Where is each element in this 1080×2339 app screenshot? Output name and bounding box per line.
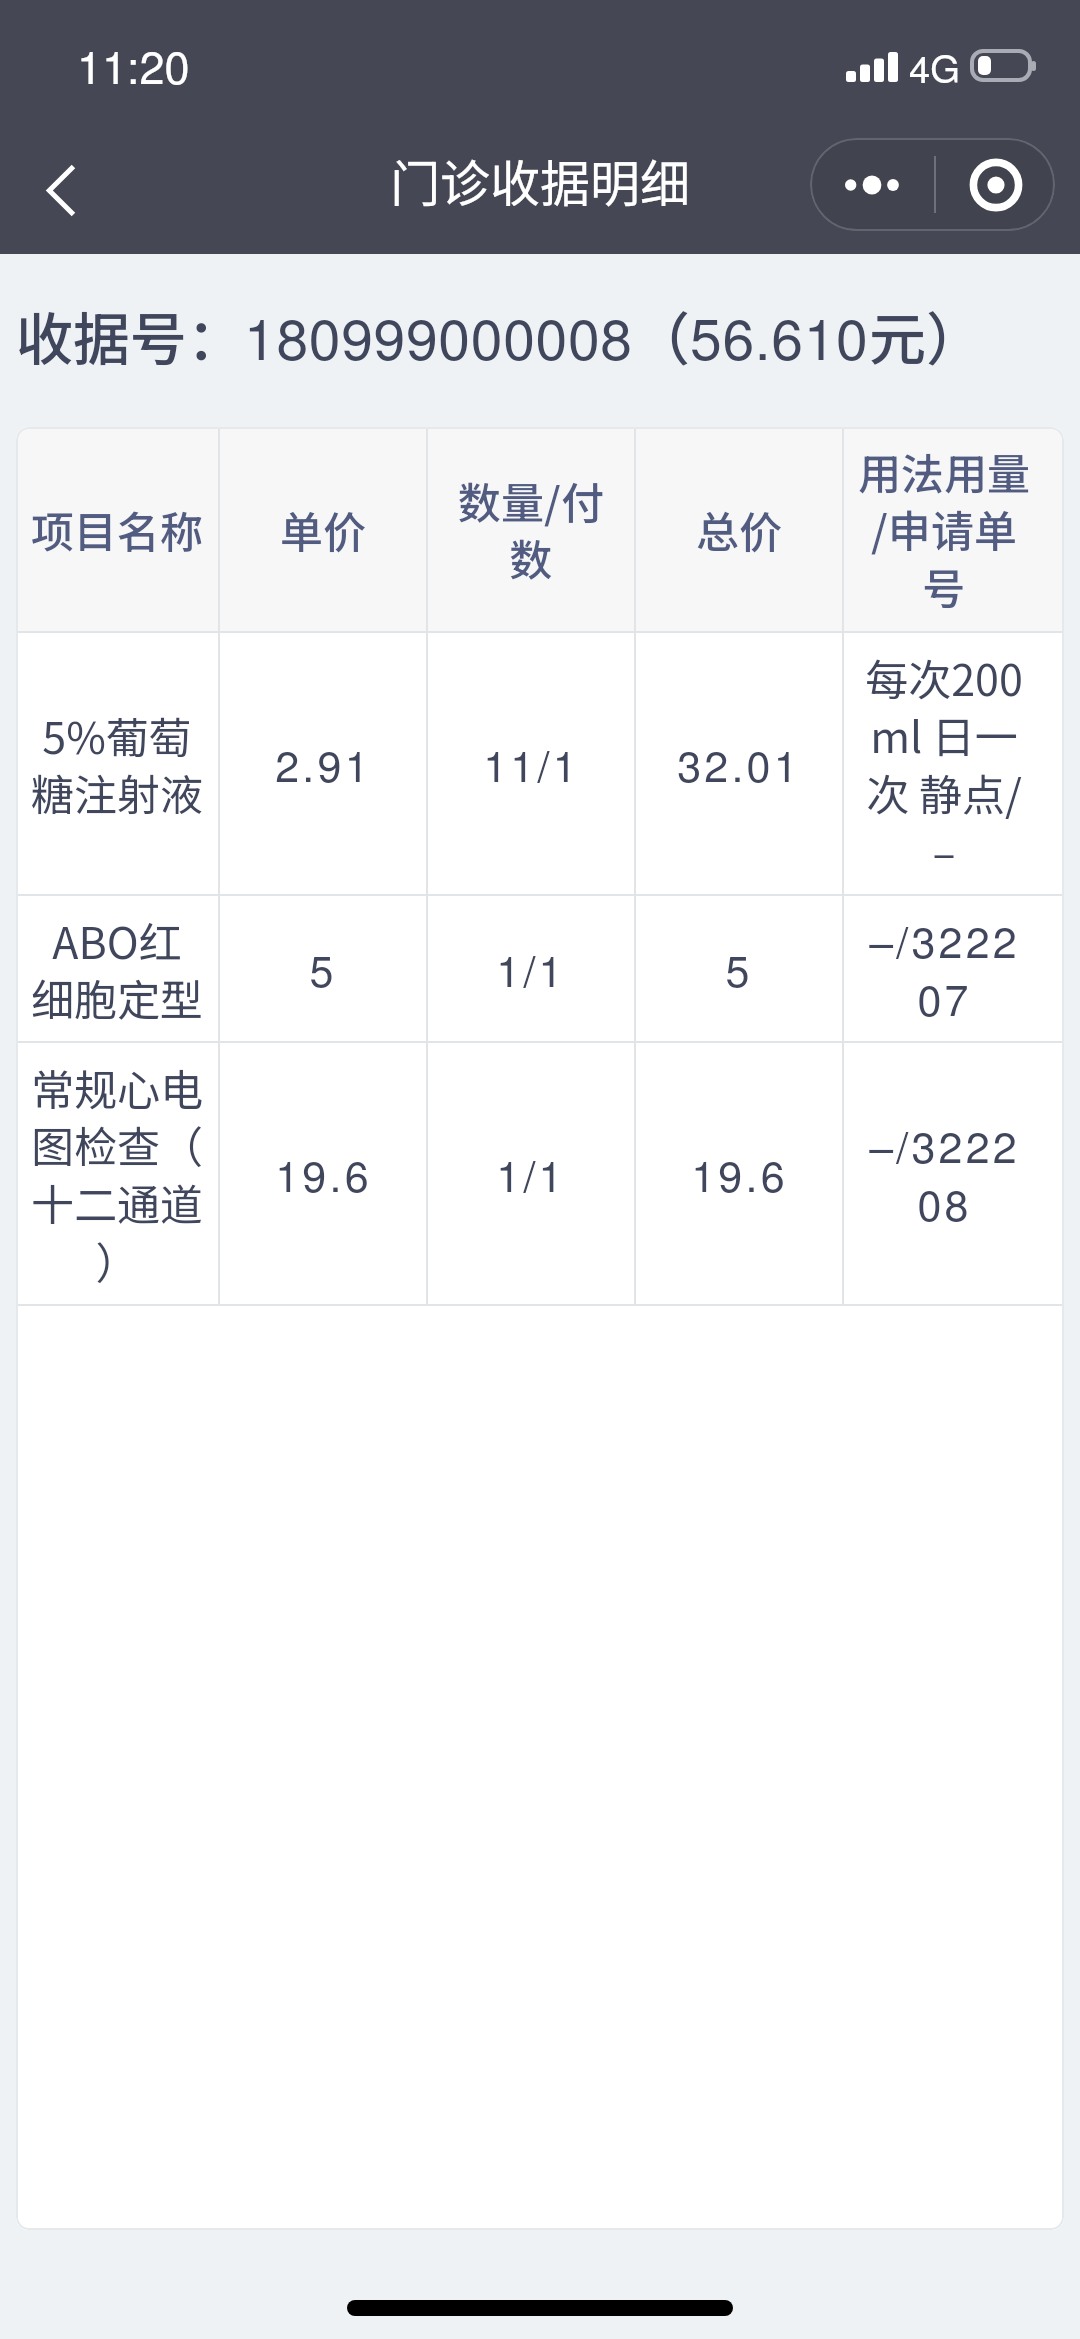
staticText: 数量/付 数 [458, 469, 604, 589]
staticText: 5 [309, 938, 337, 1000]
staticText: 1/1 [496, 938, 566, 1000]
staticText: 5%葡萄 糖注射液 [31, 704, 203, 824]
staticText: 总价 [696, 498, 782, 560]
staticText: 2.91 [275, 733, 372, 795]
staticText: 5 [725, 938, 753, 1000]
staticText: 11:20 [77, 32, 190, 96]
button[interactable]: More options [810, 138, 934, 231]
staticText: 单价 [280, 498, 366, 560]
staticText: 收据号： [16, 294, 244, 377]
staticText: 19.6 [275, 1143, 372, 1205]
staticText: 180999000008 [244, 295, 633, 377]
button[interactable]: Close mini program [936, 138, 1055, 231]
staticText: （ [633, 294, 690, 377]
staticText: –/3222 08 [869, 1114, 1020, 1234]
staticText: 项目名称 [31, 498, 203, 560]
staticText: 4G [909, 39, 960, 93]
staticText: 元） [869, 294, 983, 377]
staticText: 门诊收据明细 [390, 144, 690, 216]
staticText: –/3222 07 [869, 909, 1020, 1029]
staticText: 56.610 [690, 295, 869, 377]
staticText: 11/1 [483, 733, 580, 795]
button[interactable]: Back [0, 130, 120, 250]
staticText: 常规心电 图检查（ 十二通道 ） [31, 1056, 203, 1292]
staticText: 每次200 ml 日一 次 静点/ – [865, 646, 1023, 882]
staticText: 19.6 [691, 1143, 788, 1205]
staticText: 32.01 [677, 733, 801, 795]
staticText: 1/1 [496, 1143, 566, 1205]
staticText: ABO红 细胞定型 [31, 909, 203, 1029]
staticText: 用法用量 /申请单 号 [858, 440, 1030, 618]
